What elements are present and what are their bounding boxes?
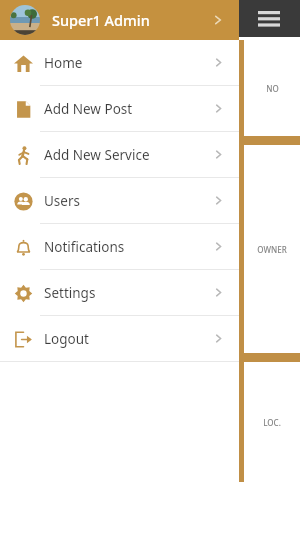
button[interactable]: Notifications	[0, 224, 239, 269]
button[interactable]: Home	[0, 40, 239, 85]
staticText: Super1 Admin	[52, 10, 211, 30]
staticText: Settings	[44, 284, 212, 302]
staticText: OWNER	[257, 244, 287, 255]
staticText: NO	[266, 83, 279, 94]
button[interactable]: Add New Post	[0, 86, 239, 131]
staticText: Add New Post	[44, 100, 212, 118]
staticText: Users	[44, 192, 212, 210]
button[interactable]: Open navigation menu	[249, 0, 289, 37]
button[interactable]: Add New Service	[0, 132, 239, 177]
button[interactable]: Super1 Admin	[0, 0, 239, 40]
button[interactable]: Settings	[0, 270, 239, 315]
staticText: Notifications	[44, 238, 212, 256]
button[interactable]: Logout	[0, 316, 239, 361]
button[interactable]: Users	[0, 178, 239, 223]
staticText: Logout	[44, 330, 212, 348]
staticText: Home	[44, 54, 212, 72]
staticText: Add New Service	[44, 146, 212, 164]
staticText: LOC.	[263, 417, 281, 428]
